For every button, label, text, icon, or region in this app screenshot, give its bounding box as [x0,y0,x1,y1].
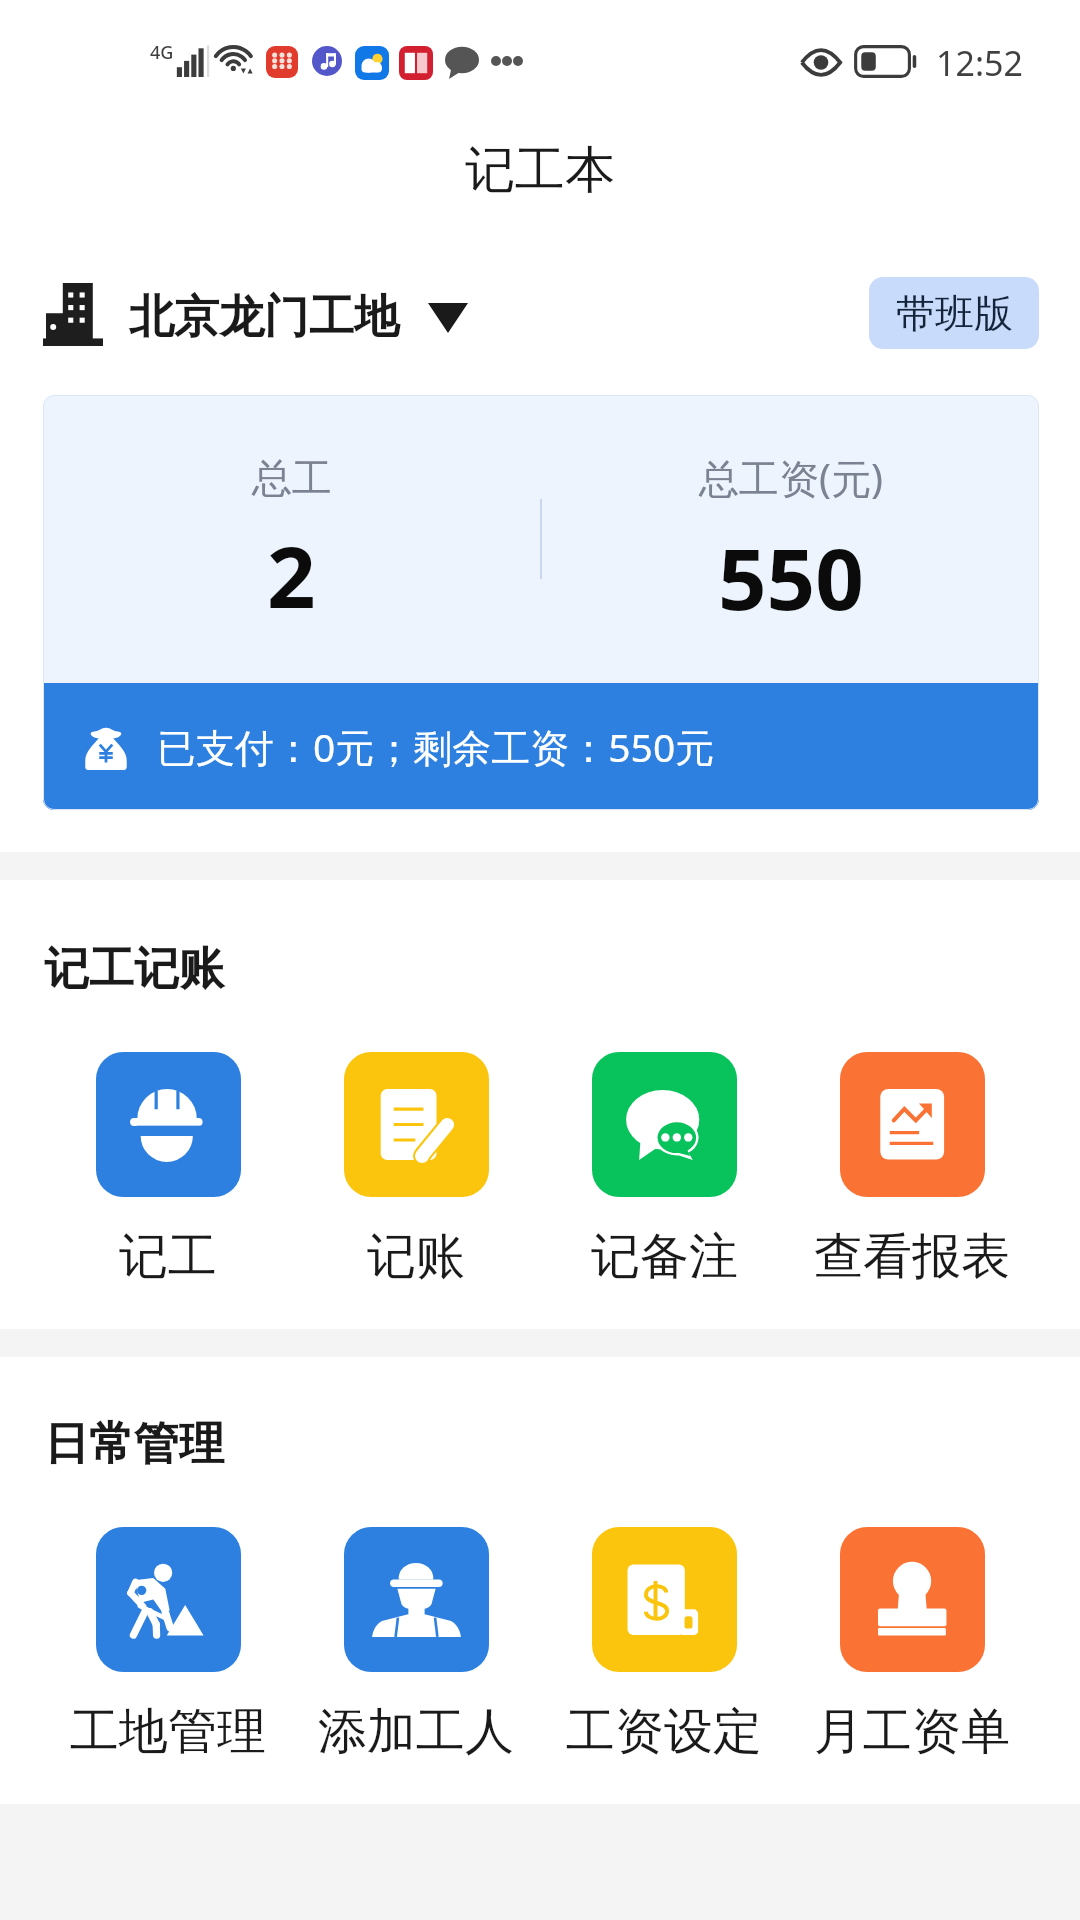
staticText: 总工资(元) [699,450,883,505]
staticText: 月工资单 [814,1701,1010,1763]
button[interactable]: 工资设定 [540,1527,788,1763]
staticText: 带班版 [896,289,1013,338]
button[interactable]: 添加工人 [292,1527,540,1763]
button[interactable]: 查看报表 [788,1052,1036,1288]
button[interactable]: 带班版 [869,277,1039,349]
staticText: 工资设定 [566,1701,762,1763]
staticText: 550 [718,519,864,635]
button[interactable]: 记工 [44,1052,292,1288]
staticText: 已支付：0元；剩余工资：550元 [157,720,715,773]
staticText: 工地管理 [70,1701,266,1763]
button[interactable]: 月工资单 [788,1527,1036,1763]
staticText: 记工 [119,1226,217,1288]
staticText: 记备注 [591,1226,738,1288]
staticText: 添加工人 [318,1701,514,1763]
staticText: 北京龙门工地 [129,289,399,346]
staticText: 4G [150,40,174,65]
staticText: 日常管理 [44,1416,224,1473]
button[interactable]: 记备注 [540,1052,788,1288]
button[interactable]: 工地管理 [44,1527,292,1763]
staticText: 记工记账 [44,941,224,998]
button[interactable]: 已支付：0元；剩余工资：550元 [43,683,1039,810]
staticText: 记工本 [465,139,615,202]
staticText: 记账 [367,1226,465,1288]
staticText: 2 [267,517,316,633]
staticText: 12:52 [936,40,1023,86]
staticText: 总工 [252,453,332,503]
staticText: 查看报表 [814,1226,1010,1288]
button[interactable]: 记账 [292,1052,540,1288]
button[interactable]: 选择工地：北京龙门工地 [43,286,468,349]
